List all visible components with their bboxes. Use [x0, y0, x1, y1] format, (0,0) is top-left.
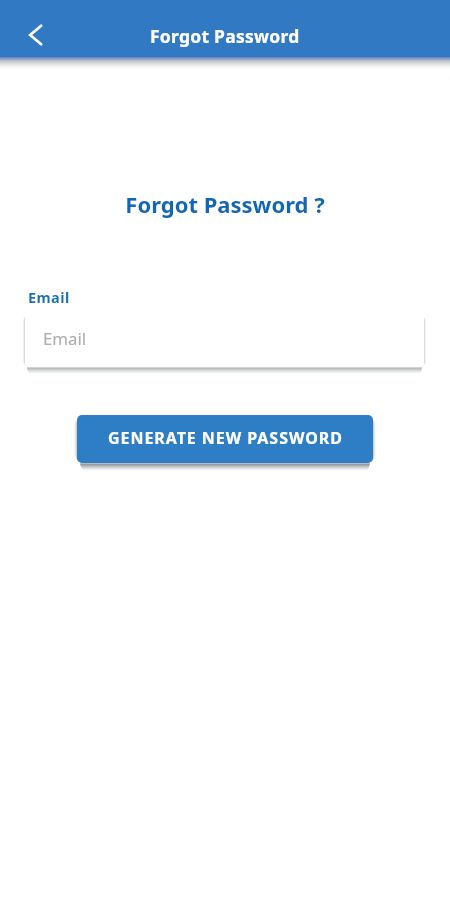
staticText: Forgot Password ?	[0, 189, 450, 219]
staticText: Email	[43, 327, 87, 350]
staticText: GENERATE NEW PASSWORD	[108, 427, 343, 449]
staticText: Email	[28, 287, 70, 307]
button[interactable]: GENERATE NEW PASSWORD	[77, 415, 373, 463]
button[interactable]: Email	[25, 313, 424, 367]
button[interactable]: Back	[13, 13, 57, 57]
staticText: Forgot Password	[150, 24, 300, 48]
